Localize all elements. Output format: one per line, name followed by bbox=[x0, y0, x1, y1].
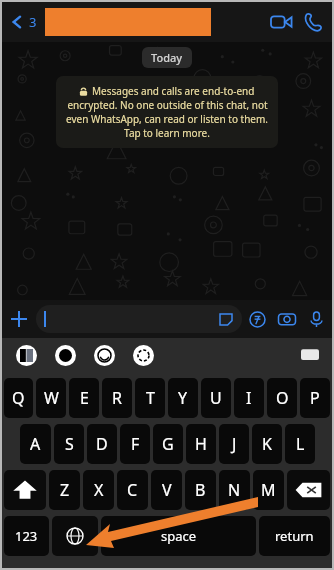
staticText: L bbox=[296, 433, 305, 455]
button[interactable]: A bbox=[20, 424, 51, 464]
staticText: Today bbox=[151, 50, 183, 65]
button[interactable]: App icon 2 bbox=[94, 345, 115, 366]
staticText: E bbox=[80, 387, 89, 409]
button[interactable]: J bbox=[219, 424, 249, 464]
button[interactable]: Camera bbox=[272, 304, 302, 334]
button[interactable]: Voice call bbox=[298, 5, 328, 39]
staticText: T bbox=[146, 387, 155, 409]
button[interactable]: I bbox=[234, 378, 264, 418]
button[interactable]: F bbox=[120, 424, 150, 464]
staticText: H bbox=[195, 433, 207, 455]
staticText: G bbox=[162, 433, 174, 455]
staticText: D bbox=[96, 433, 108, 455]
button[interactable]: Hide keyboard bbox=[296, 341, 324, 369]
staticText: Messages and calls are end-to-end bbox=[92, 84, 255, 98]
button[interactable]: P bbox=[300, 378, 330, 418]
staticText: Z bbox=[60, 479, 70, 501]
button[interactable]: return bbox=[259, 516, 330, 556]
button[interactable]: S bbox=[54, 424, 84, 464]
button[interactable]: G bbox=[153, 424, 183, 464]
button[interactable]: R bbox=[102, 378, 132, 418]
button[interactable]: space bbox=[101, 516, 256, 556]
staticText: return bbox=[275, 527, 314, 545]
staticText: J bbox=[232, 433, 237, 455]
staticText: 3 bbox=[29, 13, 37, 31]
button[interactable]: Backspace bbox=[287, 470, 330, 510]
staticText: P bbox=[310, 387, 320, 409]
button[interactable]: T bbox=[135, 378, 165, 418]
button[interactable]: Video call bbox=[264, 5, 298, 39]
button[interactable]: Today bbox=[142, 47, 192, 68]
button[interactable]: 123 bbox=[4, 516, 49, 556]
staticText: U bbox=[210, 387, 222, 409]
button[interactable]: Y bbox=[168, 378, 198, 418]
staticText: V bbox=[162, 479, 172, 501]
staticText: N bbox=[228, 479, 241, 501]
button[interactable] bbox=[36, 305, 242, 333]
staticText: 123 bbox=[15, 527, 38, 545]
staticText: R bbox=[112, 387, 122, 409]
staticText: even WhatsApp, can read or listen to the… bbox=[66, 112, 268, 126]
button[interactable]: Voice message bbox=[302, 304, 330, 334]
button[interactable]: V bbox=[151, 470, 182, 510]
button[interactable]: Attach bbox=[2, 302, 36, 336]
button[interactable]: Messages and calls are end-to-end bbox=[56, 76, 278, 148]
button[interactable]: 3 bbox=[2, 2, 41, 42]
button[interactable]: App icon 0 bbox=[16, 345, 37, 366]
staticText: F bbox=[131, 433, 140, 455]
button[interactable]: O bbox=[267, 378, 297, 418]
button[interactable]: B bbox=[185, 470, 216, 510]
button[interactable]: App icon 3 bbox=[133, 345, 154, 366]
staticText: C bbox=[127, 479, 138, 501]
staticText: Tap to learn more. bbox=[124, 126, 210, 140]
button[interactable]: H bbox=[186, 424, 216, 464]
staticText: Y bbox=[178, 387, 188, 409]
button[interactable]: E bbox=[69, 378, 99, 418]
button[interactable]: C bbox=[117, 470, 148, 510]
button[interactable]: Payment bbox=[242, 304, 272, 334]
staticText: A bbox=[30, 433, 41, 455]
button[interactable]: Switch keyboard bbox=[52, 516, 98, 556]
button[interactable]: Z bbox=[49, 470, 80, 510]
button[interactable]: W bbox=[36, 378, 66, 418]
staticText: K bbox=[262, 433, 272, 455]
button[interactable]: U bbox=[201, 378, 231, 418]
staticText: M bbox=[261, 479, 276, 501]
staticText: encrypted. No one outside of this chat, … bbox=[67, 98, 268, 112]
button[interactable]: L bbox=[285, 424, 315, 464]
staticText: space bbox=[161, 527, 197, 545]
button[interactable]: M bbox=[253, 470, 284, 510]
staticText: O bbox=[276, 387, 289, 409]
staticText: I bbox=[246, 387, 252, 409]
button[interactable]: N bbox=[219, 470, 250, 510]
staticText: B bbox=[195, 479, 206, 501]
button[interactable]: K bbox=[252, 424, 282, 464]
staticText: W bbox=[44, 387, 59, 409]
button[interactable]: Shift bbox=[4, 470, 46, 510]
staticText: S bbox=[65, 433, 74, 455]
staticText: X bbox=[94, 479, 104, 501]
button[interactable]: App icon 1 bbox=[55, 345, 76, 366]
staticText: Q bbox=[12, 387, 25, 409]
button[interactable]: D bbox=[87, 424, 117, 464]
button[interactable]: Q bbox=[4, 378, 33, 418]
button[interactable]: X bbox=[83, 470, 114, 510]
